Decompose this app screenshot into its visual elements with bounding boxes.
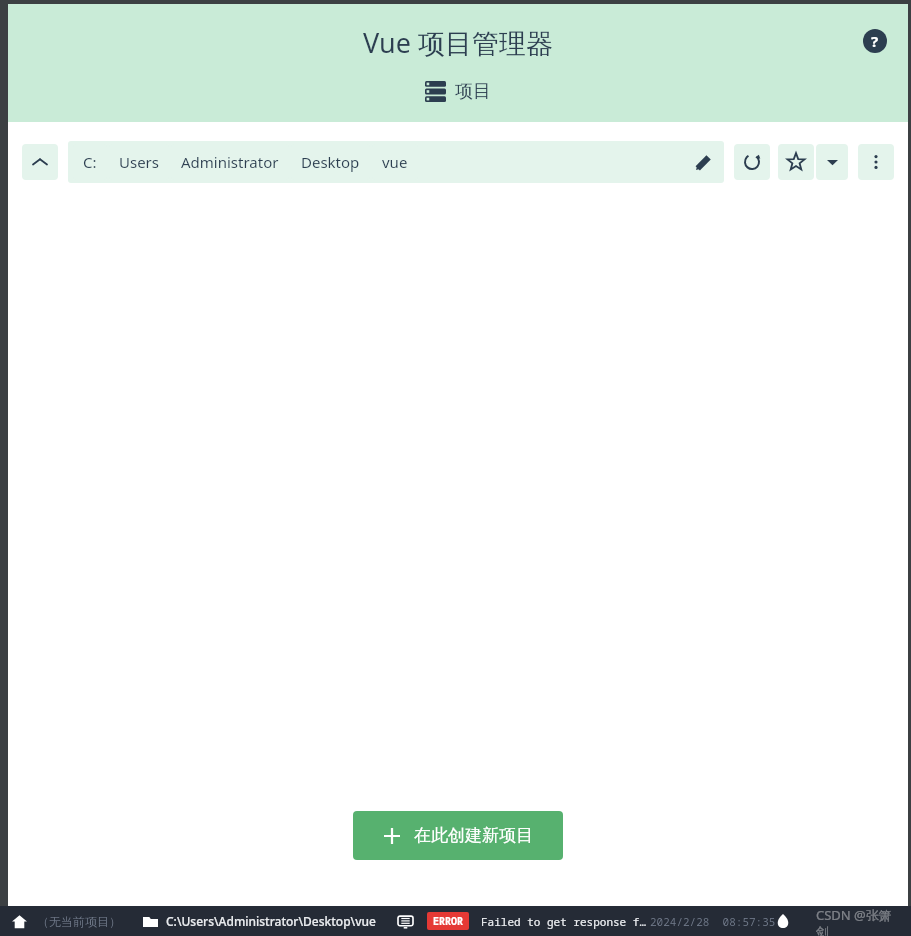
staticText: Failed to get response f… [481, 914, 646, 929]
staticText: （无当前项目） [37, 914, 121, 929]
button[interactable]: Desktop [291, 144, 370, 180]
button[interactable]: Users [109, 144, 169, 180]
button[interactable]: vue [372, 144, 418, 180]
button[interactable]: C: [73, 144, 107, 180]
button[interactable]: Edit path [682, 141, 724, 183]
button[interactable]: Collapse [22, 144, 58, 180]
button[interactable]: Theme [776, 914, 790, 928]
staticText: 在此创建新项目 [414, 825, 533, 846]
button[interactable]: Administrator [171, 144, 289, 180]
button[interactable]: Refresh [734, 144, 770, 180]
staticText: CSDN @张箫剑 [816, 906, 899, 936]
staticText: C:\Users\Administrator\Desktop\vue [166, 913, 376, 929]
button[interactable]: Help [862, 28, 888, 54]
staticText: Users [119, 152, 159, 172]
button[interactable]: Logs [398, 914, 413, 929]
button[interactable]: Favorites [778, 144, 814, 180]
button[interactable]: 项目 [8, 80, 908, 122]
button[interactable]: 在此创建新项目 [353, 811, 563, 860]
button[interactable]: Home [12, 914, 27, 929]
staticText: Desktop [301, 152, 360, 172]
staticText: 项目 [455, 80, 491, 103]
staticText: Administrator [181, 152, 279, 172]
staticText: ? [871, 31, 879, 51]
staticText: C: [83, 152, 97, 172]
staticText: ERROR [433, 914, 463, 928]
staticText: Vue 项目管理器 [363, 24, 553, 61]
button[interactable]: More options [858, 144, 894, 180]
button[interactable]: More favorites [816, 144, 848, 180]
staticText: vue [382, 152, 408, 172]
staticText: 2024/2/28 08:57:35 [650, 914, 776, 929]
